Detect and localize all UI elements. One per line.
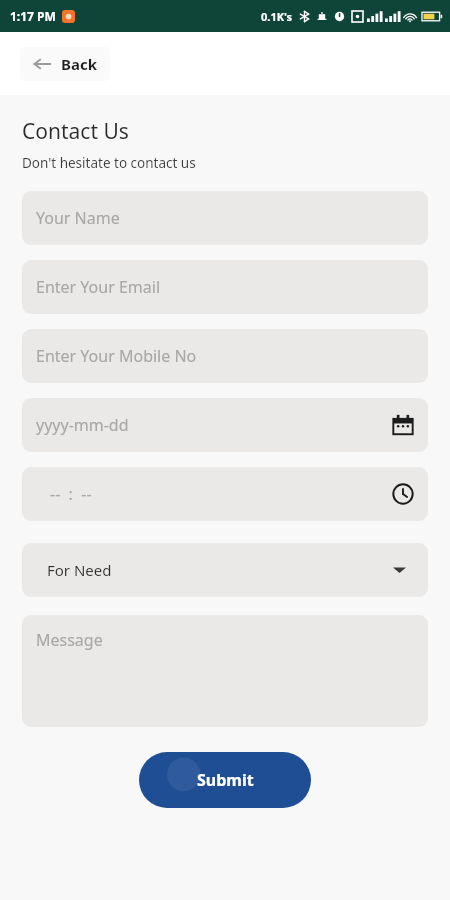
staticText: Enter Your Mobile No	[36, 345, 197, 367]
button[interactable]: Enter Your Mobile No	[22, 329, 428, 383]
staticText: Back	[61, 54, 98, 74]
button[interactable]: Message	[22, 615, 428, 727]
button[interactable]: yyyy-mm-dd	[22, 398, 428, 452]
button[interactable]: Enter Your Email	[22, 260, 428, 314]
staticText: Don't hesitate to contact us	[22, 154, 196, 172]
button[interactable]: Your Name	[22, 191, 428, 245]
button[interactable]: Pick date	[392, 414, 414, 436]
button[interactable]: -- : --	[22, 467, 428, 521]
staticText: -- : --	[50, 483, 92, 505]
staticText: Message	[36, 629, 103, 651]
staticText: Your Name	[36, 207, 120, 229]
button[interactable]: For Need	[22, 543, 428, 597]
staticText: Submit	[197, 769, 254, 791]
button[interactable]: Submit	[139, 752, 311, 808]
staticText: Contact Us	[22, 117, 129, 146]
staticText: For Need	[47, 560, 112, 580]
staticText: yyyy-mm-dd	[36, 414, 129, 436]
staticText: 1:17 PM	[10, 8, 56, 24]
staticText: Enter Your Email	[36, 276, 161, 298]
button[interactable]: Pick time	[392, 483, 414, 505]
staticText: 0.1K's	[261, 9, 293, 24]
button[interactable]: Back	[20, 47, 110, 81]
